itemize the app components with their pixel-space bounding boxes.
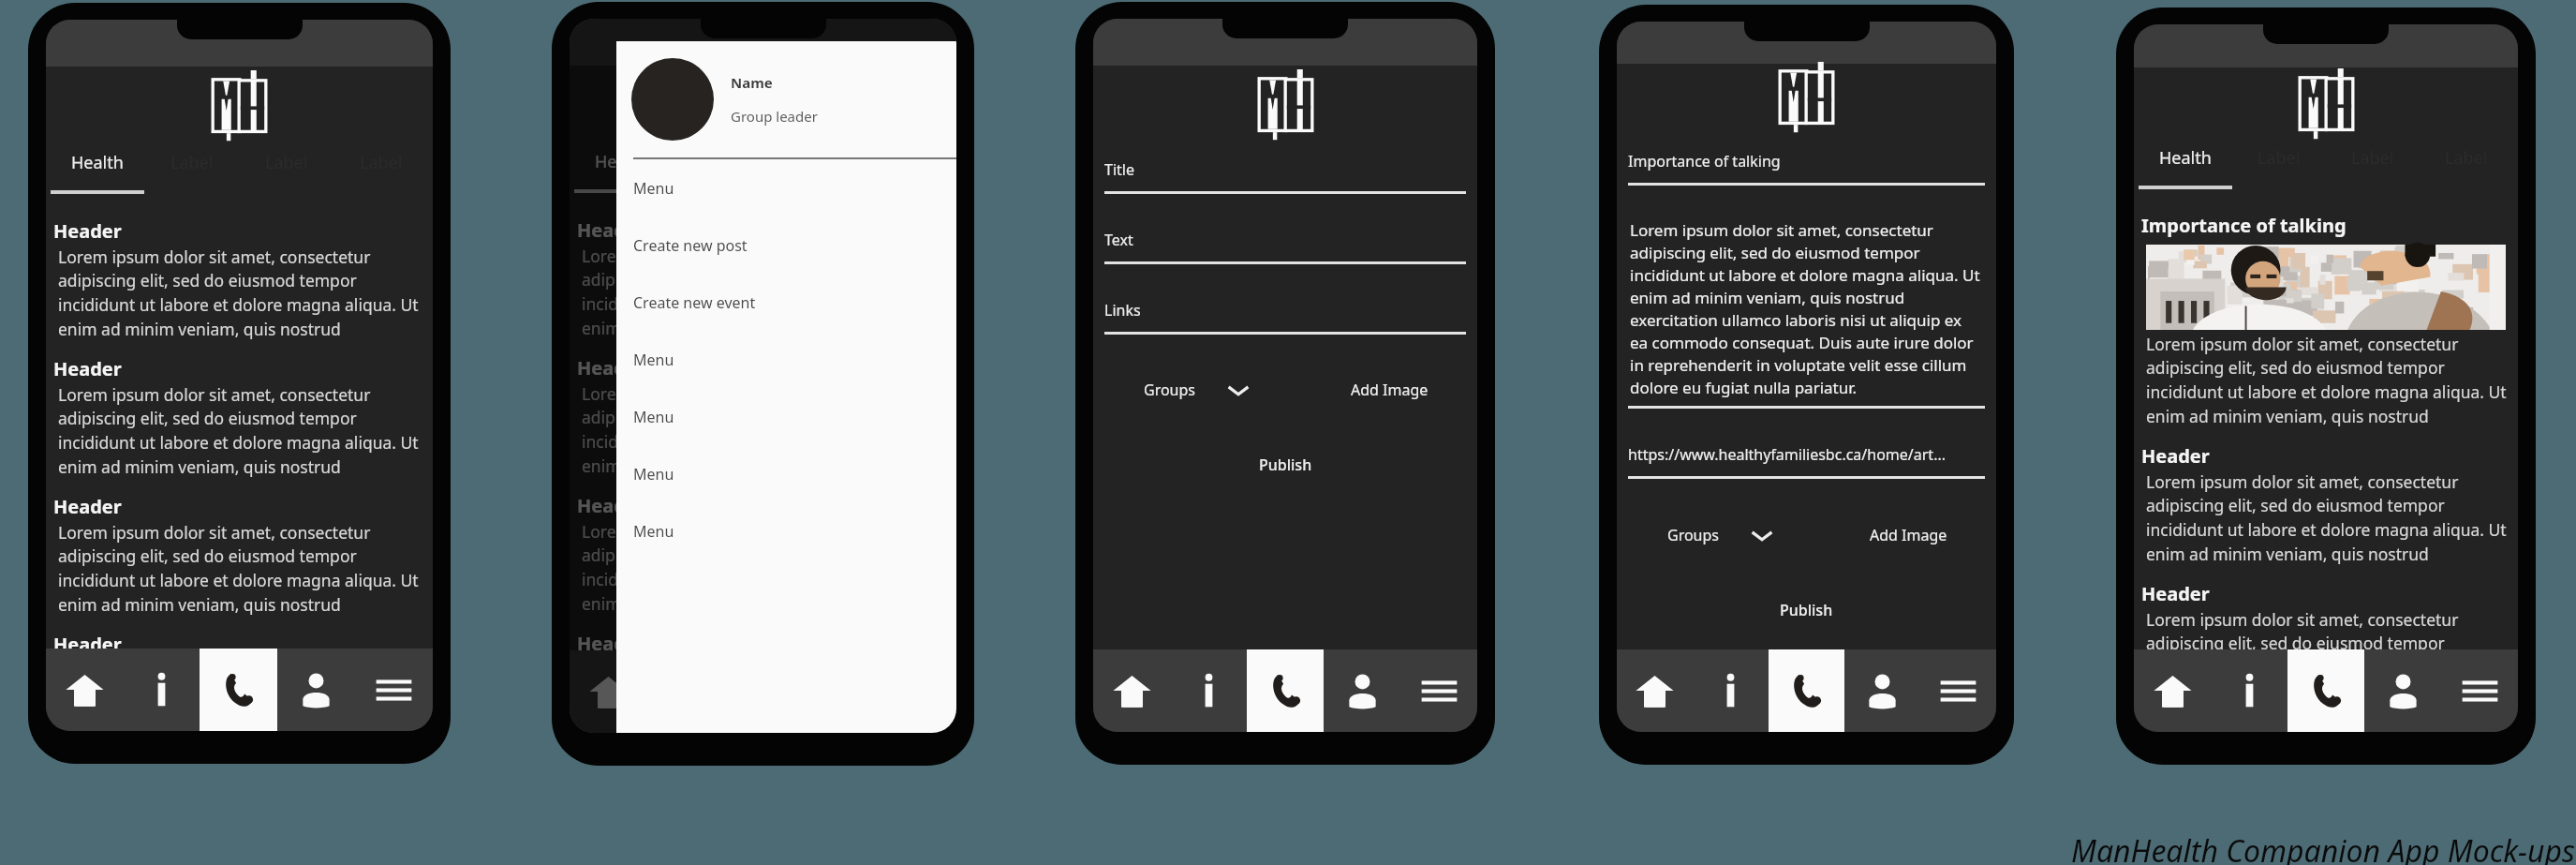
staticText: Lorem ipsum dolor sit amet, consectetur … [1630, 219, 1983, 398]
staticText: https://www.healthyfamiliesbc.ca/home/ar… [1628, 444, 1947, 465]
button[interactable]: Home [2134, 649, 2211, 732]
button[interactable]: https://www.healthyfamiliesbc.ca/home/ar… [1628, 444, 1985, 479]
staticText: Lorem ipsum dolor sit amet, consectetur … [2146, 608, 2518, 704]
staticText: Header [53, 218, 122, 244]
staticText: Title [1104, 159, 1134, 180]
button[interactable]: Links [1104, 300, 1466, 335]
staticText: Group leader [731, 107, 818, 126]
staticText: Lorem ipsum dolor sit amet, consectetur … [58, 246, 433, 341]
button[interactable]: Profile [1324, 649, 1400, 732]
button[interactable]: Call [200, 649, 277, 731]
staticText: Label [883, 150, 926, 173]
staticText: Header [2141, 581, 2210, 606]
button[interactable]: Menu [616, 388, 956, 445]
staticText: Menu [633, 407, 674, 427]
button[interactable]: Menu [1920, 649, 1996, 732]
button[interactable]: Lorem ipsum dolor sit amet, consectetur … [1628, 219, 1985, 409]
staticText: Menu [633, 350, 674, 370]
staticText: Create new post [633, 235, 748, 256]
staticText: Label [694, 150, 737, 173]
button[interactable]: Expand groups [1226, 378, 1251, 402]
button[interactable]: Profile [1844, 649, 1920, 732]
button[interactable]: Health [574, 150, 668, 193]
staticText: Links [1104, 300, 1141, 321]
button[interactable]: Call [2287, 649, 2364, 732]
button[interactable]: Menu [616, 502, 956, 559]
button[interactable]: Groups [1144, 380, 1196, 400]
button[interactable]: Home [1617, 649, 1693, 732]
button[interactable]: Groups [1667, 525, 1720, 545]
staticText: Lorem ipsum dolor sit amet, consectetur … [58, 521, 433, 617]
button[interactable]: Health [2139, 146, 2232, 189]
staticText: Header [53, 494, 122, 519]
button[interactable]: Menu [2441, 649, 2518, 732]
button[interactable]: Home [46, 649, 123, 731]
button[interactable]: Call [1769, 649, 1844, 732]
staticText: Lorem ipsum dolor sit amet, consectetur … [2146, 470, 2518, 566]
button[interactable]: Info [123, 649, 200, 731]
button[interactable]: Label [2232, 146, 2326, 189]
button[interactable]: Label [144, 151, 239, 194]
staticText: Name [731, 73, 773, 92]
staticText: Health [595, 150, 647, 173]
button[interactable]: Profile [2364, 649, 2441, 732]
staticText: Text [1104, 230, 1133, 250]
staticText: Header [577, 631, 645, 656]
button[interactable]: Menu [616, 445, 956, 502]
button[interactable]: Label [762, 150, 857, 193]
staticText: Lorem ipsum dolor sit amet, consectetur … [58, 659, 433, 731]
button[interactable]: Expand groups [1750, 523, 1774, 547]
staticText: Header [53, 632, 122, 657]
staticText: Create new event [633, 292, 756, 313]
staticText: Menu [633, 178, 674, 199]
button[interactable]: Create new event [616, 274, 956, 331]
staticText: Importance of talking [1628, 151, 1781, 172]
button[interactable]: Add Image [1351, 380, 1429, 400]
button[interactable]: Menu [1400, 649, 1477, 732]
button[interactable]: Add Image [1870, 525, 1947, 545]
staticText: Importance of talking [2141, 213, 2347, 238]
button[interactable]: Info [2211, 649, 2287, 732]
button[interactable]: Text [1104, 230, 1466, 264]
staticText: Header [577, 493, 645, 518]
staticText: Health [2159, 146, 2212, 170]
button[interactable]: Info [1693, 649, 1769, 732]
button[interactable]: Menu [879, 650, 956, 733]
button[interactable]: Title [1104, 159, 1466, 194]
staticText: Label [789, 150, 832, 173]
button[interactable]: Menu [355, 649, 433, 731]
button[interactable]: Importance of talking [1628, 151, 1985, 186]
staticText: Menu [633, 464, 674, 485]
button[interactable]: Menu [616, 159, 956, 216]
button[interactable]: Health [51, 151, 144, 194]
staticText: Lorem ipsum dolor sit amet, consectetur … [582, 658, 956, 733]
button[interactable]: Info [1170, 649, 1247, 732]
staticText: Lorem ipsum dolor sit amet, consectetur … [582, 382, 956, 478]
button[interactable]: Profile [277, 649, 355, 731]
staticText: Health [71, 151, 124, 174]
button[interactable]: Label [857, 150, 952, 193]
staticText: Header [577, 355, 645, 380]
button[interactable]: Home [570, 650, 646, 733]
button[interactable]: Menu [616, 331, 956, 388]
button[interactable]: Label [668, 150, 762, 193]
button[interactable]: Call [1247, 649, 1324, 732]
staticText: Header [577, 217, 645, 243]
staticText: Lorem ipsum dolor sit amet, consectetur … [58, 383, 433, 479]
button[interactable]: Create new post [616, 216, 956, 274]
button[interactable]: Publish [1780, 600, 1833, 620]
button[interactable]: Home [1093, 649, 1170, 732]
button[interactable]: Publish [1259, 455, 1312, 475]
